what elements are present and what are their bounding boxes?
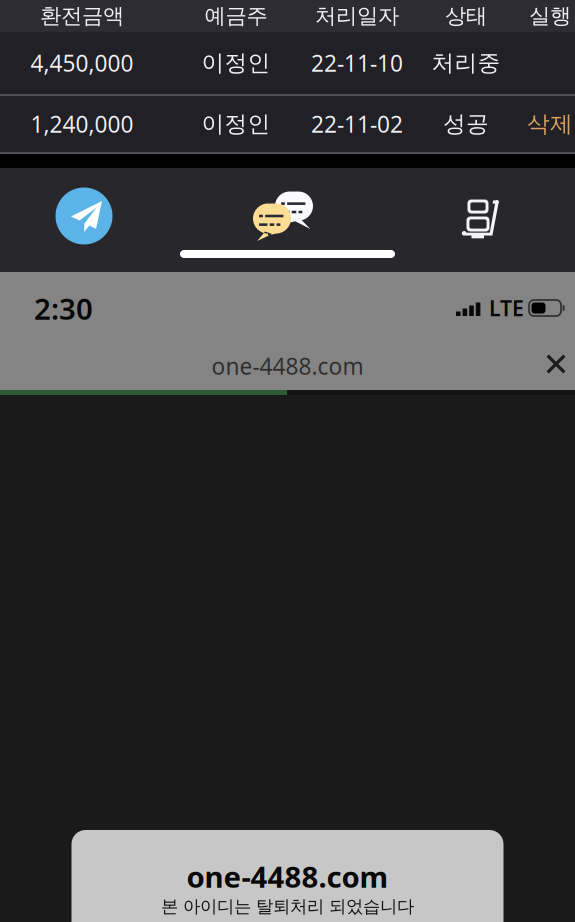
staticText: 2:30 <box>34 289 93 328</box>
staticText: 처리중 <box>431 49 500 77</box>
button[interactable]: Delivery <box>436 172 528 264</box>
staticText: 이정인 <box>201 110 270 138</box>
staticText: 22-11-02 <box>311 109 403 139</box>
staticText: one-4488.com <box>186 857 388 896</box>
staticText: 이정인 <box>201 49 270 77</box>
staticText: 처리일자 <box>315 3 399 29</box>
staticText: 22-11-10 <box>311 48 403 78</box>
button[interactable]: Telegram <box>38 170 130 262</box>
button[interactable]: Close <box>534 344 575 384</box>
staticText: 예금주 <box>204 3 267 29</box>
staticText: 성공 <box>443 110 489 138</box>
staticText: 환전금액 <box>40 3 124 29</box>
staticText: 1,240,000 <box>30 109 133 139</box>
button[interactable]: 4,450,000 <box>0 32 575 94</box>
staticText: 상태 <box>445 3 487 29</box>
staticText: 삭제 <box>527 110 573 138</box>
staticText: one-4488.com <box>211 351 363 381</box>
button[interactable]: 1,240,000 <box>0 96 575 152</box>
staticText: 본 아이디는 탈퇴처리 되었습니다 <box>161 896 414 917</box>
button[interactable]: Chat <box>238 171 330 263</box>
staticText: 실행 <box>529 3 571 29</box>
staticText: LTE <box>489 294 524 322</box>
staticText: 4,450,000 <box>30 48 133 78</box>
